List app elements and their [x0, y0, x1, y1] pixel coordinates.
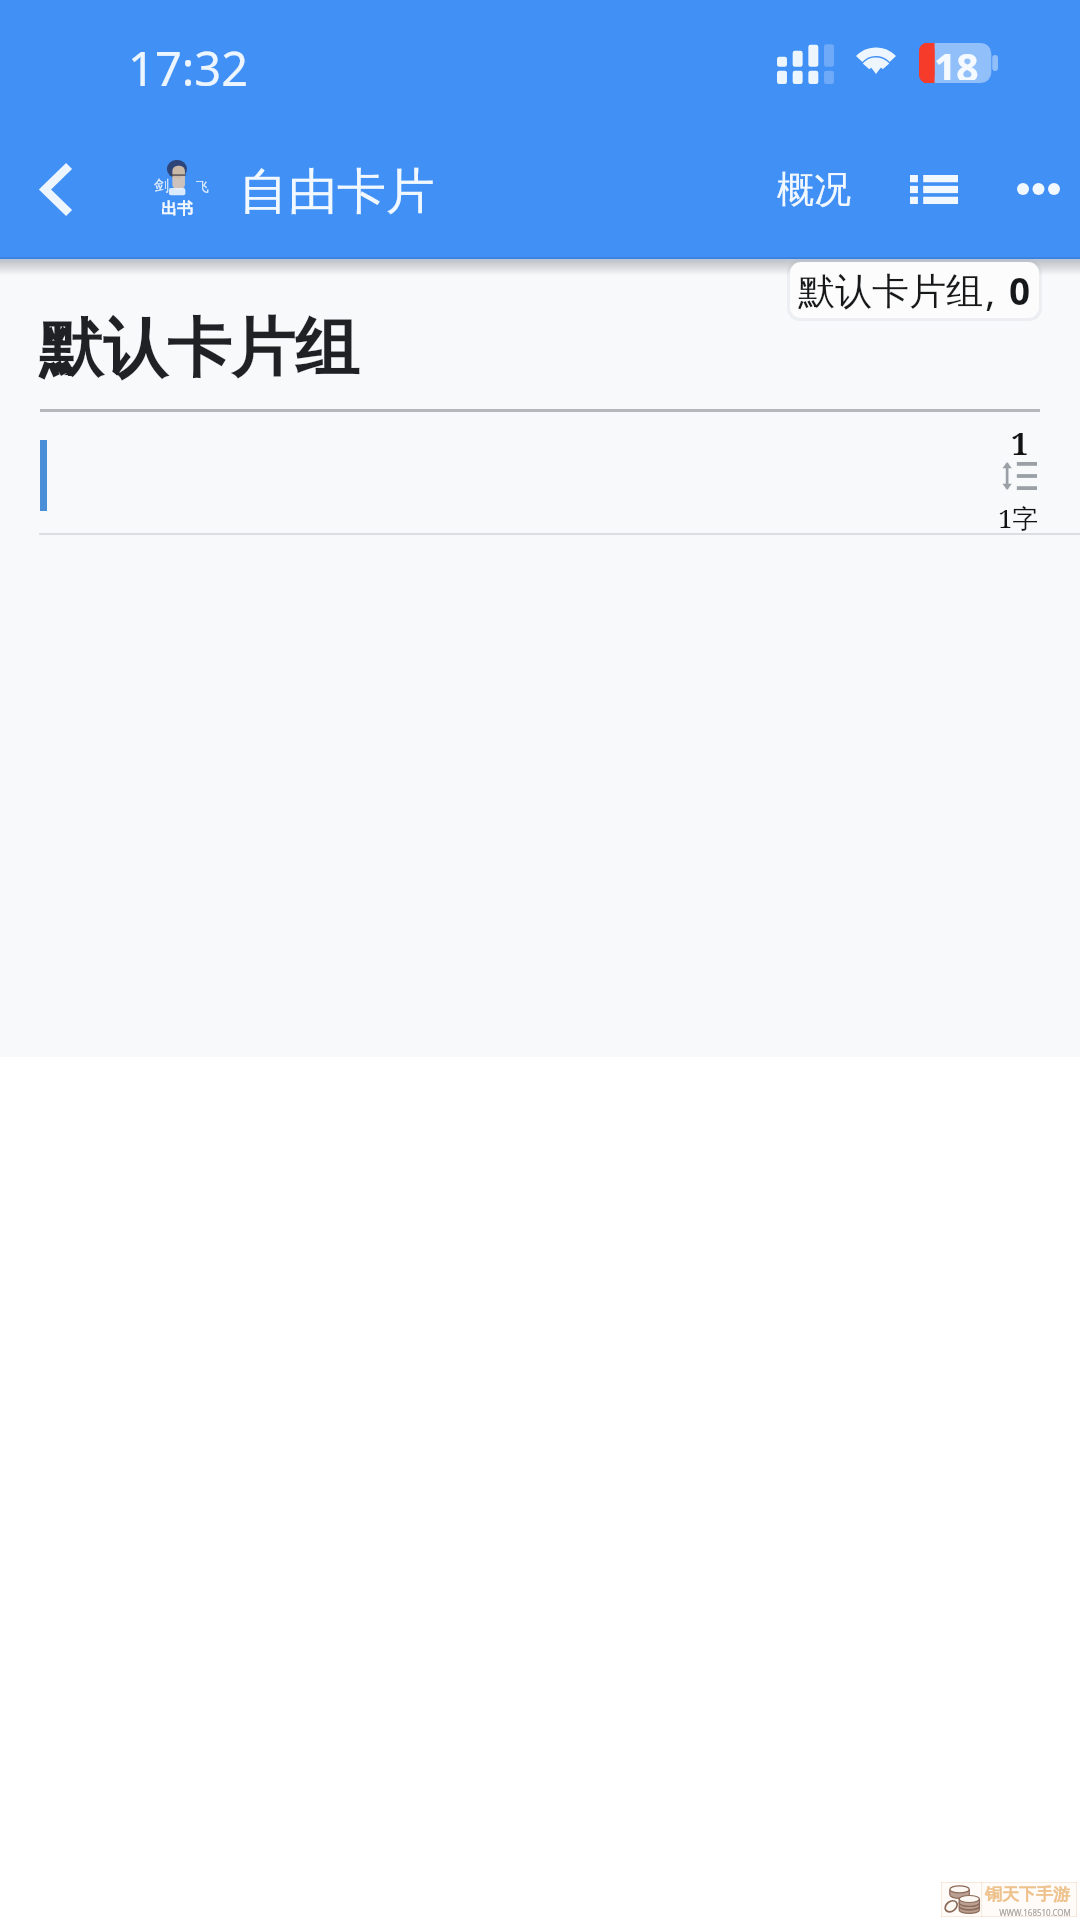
button[interactable]: Back	[10, 144, 100, 234]
button[interactable]: 概况	[757, 141, 870, 237]
staticText: 自由卡片	[239, 161, 435, 223]
staticText: 1字	[998, 500, 1039, 536]
staticText: 概况	[777, 166, 851, 213]
button[interactable]: 卡片 1字	[0, 412, 1080, 536]
staticText: 出书	[161, 199, 193, 219]
staticText: 飞	[196, 178, 209, 194]
staticText: 18	[934, 40, 979, 80]
staticText: 17:32	[128, 36, 249, 100]
button[interactable]: 默认卡片组, 0	[790, 262, 1039, 318]
button[interactable]: Sort	[983, 452, 1055, 500]
button[interactable]: List view	[889, 144, 979, 234]
staticText: 铜天下手游	[985, 1884, 1070, 1905]
button[interactable]: More options	[993, 144, 1080, 234]
staticText: WWW.168510.COM	[999, 1907, 1071, 1918]
staticText: 默认卡片组	[798, 268, 983, 315]
staticText: 默认卡片组	[39, 308, 359, 389]
staticText: 1	[1011, 422, 1029, 464]
staticText: ,	[985, 264, 996, 317]
staticText: 0	[1009, 265, 1031, 315]
staticText: 剑	[154, 177, 169, 196]
